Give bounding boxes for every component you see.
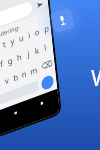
button[interactable]: Enter xyxy=(35,70,60,95)
button[interactable]: Recents xyxy=(39,100,45,106)
staticText: h xyxy=(12,49,27,65)
staticText: n xyxy=(17,66,32,82)
staticText: f xyxy=(0,56,8,70)
staticText: t xyxy=(0,37,11,51)
staticText: v xyxy=(0,72,15,88)
staticText: d xyxy=(0,59,1,74)
staticText: r xyxy=(0,39,4,54)
button[interactable] xyxy=(0,58,43,137)
staticText: i xyxy=(23,27,36,41)
staticText: m xyxy=(25,61,43,79)
staticText: o xyxy=(30,24,45,40)
button[interactable] xyxy=(0,0,39,62)
button[interactable]: Voice typing xyxy=(50,8,75,33)
staticText: g xyxy=(2,52,17,68)
staticText: ⌫ xyxy=(37,55,57,76)
staticText: Wondering- xyxy=(0,12,24,54)
staticText: k xyxy=(30,42,45,58)
staticText: l xyxy=(39,40,52,54)
staticText: p xyxy=(39,20,54,36)
staticText: Wr xyxy=(91,62,100,92)
staticText: j xyxy=(22,46,35,60)
staticText: y xyxy=(5,33,20,49)
staticText: u xyxy=(14,30,29,45)
button[interactable]: Send xyxy=(30,0,49,14)
button[interactable]: Home xyxy=(13,110,18,116)
staticText: b xyxy=(8,69,23,85)
